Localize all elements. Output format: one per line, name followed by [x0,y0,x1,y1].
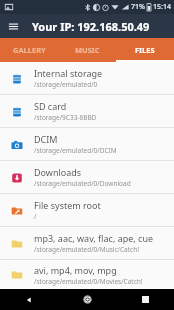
staticText: mp3, aac, wav, flac, ape, cue [34,232,154,244]
staticText: avi, mp4, mov, mpg [34,264,117,276]
staticText: /storage/emulated/0/Music/Catch! [34,245,139,254]
button[interactable]: Home [58,289,116,310]
staticText: / [34,212,37,221]
staticText: MUSIC [75,45,100,55]
staticText: Downloads [34,166,82,178]
staticText: /storage/emulated/0 [34,80,98,89]
staticText: File system root [34,199,101,211]
button[interactable]: MUSIC [58,38,116,62]
button[interactable]: Back [0,289,58,310]
button[interactable]: File system root [0,194,174,227]
staticText: 71% [131,2,145,12]
button[interactable]: avi, mp4, mov, mpg [0,260,174,289]
staticText: DCIM [34,133,58,145]
button[interactable]: FILES [116,38,174,62]
staticText: FILES [135,45,155,55]
staticText: /storage/emulated/0/DCIM [34,146,117,155]
button[interactable]: DCIM [0,128,174,161]
button[interactable]: Internal storage [0,62,174,95]
button[interactable]: Open navigation drawer [5,18,21,34]
staticText: GALLERY [13,45,46,55]
button[interactable]: Recent apps [116,289,174,310]
button[interactable]: GALLERY [0,38,58,62]
button[interactable]: Downloads [0,161,174,194]
button[interactable]: SD card [0,95,174,128]
staticText: 15:14 [153,2,171,12]
staticText: /storage/emulated/0/Download [34,179,131,188]
staticText: Internal storage [34,67,103,79]
button[interactable]: mp3, aac, wav, flac, ape, cue [0,227,174,260]
staticText: /storage/emulated/0/Movies/Catch! [34,277,143,286]
staticText: Your IP: 192.168.50.49 [32,19,150,34]
staticText: SD card [34,100,67,112]
staticText: /storage/9C33-6BBD [34,113,97,122]
